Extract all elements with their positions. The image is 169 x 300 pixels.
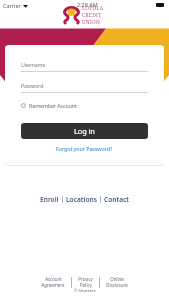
staticText: Log in bbox=[74, 126, 95, 136]
button[interactable]: Account bbox=[35, 276, 71, 288]
staticText: CREDIT bbox=[82, 12, 102, 19]
staticText: © Sharetec bbox=[74, 288, 96, 294]
staticText: Agreement bbox=[41, 282, 65, 288]
button[interactable]: Contact bbox=[101, 193, 133, 206]
button[interactable]: Locations bbox=[63, 193, 100, 206]
staticText: Remember Account bbox=[29, 102, 77, 109]
staticText: Username bbox=[21, 61, 46, 68]
button[interactable]: Privacy bbox=[72, 276, 99, 288]
staticText: Carrier bbox=[3, 2, 21, 9]
button[interactable]: Remember Account bbox=[21, 102, 77, 109]
staticText: Contact bbox=[104, 195, 130, 204]
button[interactable]: Enroll bbox=[37, 193, 62, 206]
staticText: Policy bbox=[80, 282, 92, 288]
staticText: Account bbox=[45, 276, 62, 282]
button[interactable]: Forgot your Password? bbox=[56, 145, 113, 152]
staticText: UNION bbox=[82, 19, 101, 26]
staticText: Locations bbox=[66, 195, 97, 204]
button[interactable]: Online bbox=[100, 276, 134, 288]
button[interactable]: Username bbox=[21, 61, 148, 72]
button[interactable]: Log in bbox=[21, 123, 148, 139]
staticText: Online bbox=[110, 276, 124, 282]
staticText: Password bbox=[21, 82, 44, 89]
staticText: Enroll bbox=[40, 195, 59, 204]
staticText: Disclosure bbox=[106, 282, 128, 288]
staticText: 2:28 AM bbox=[77, 1, 98, 8]
staticText: Privacy bbox=[78, 276, 93, 282]
button[interactable]: Password bbox=[21, 82, 148, 93]
staticText: LOYOLA bbox=[82, 5, 104, 12]
